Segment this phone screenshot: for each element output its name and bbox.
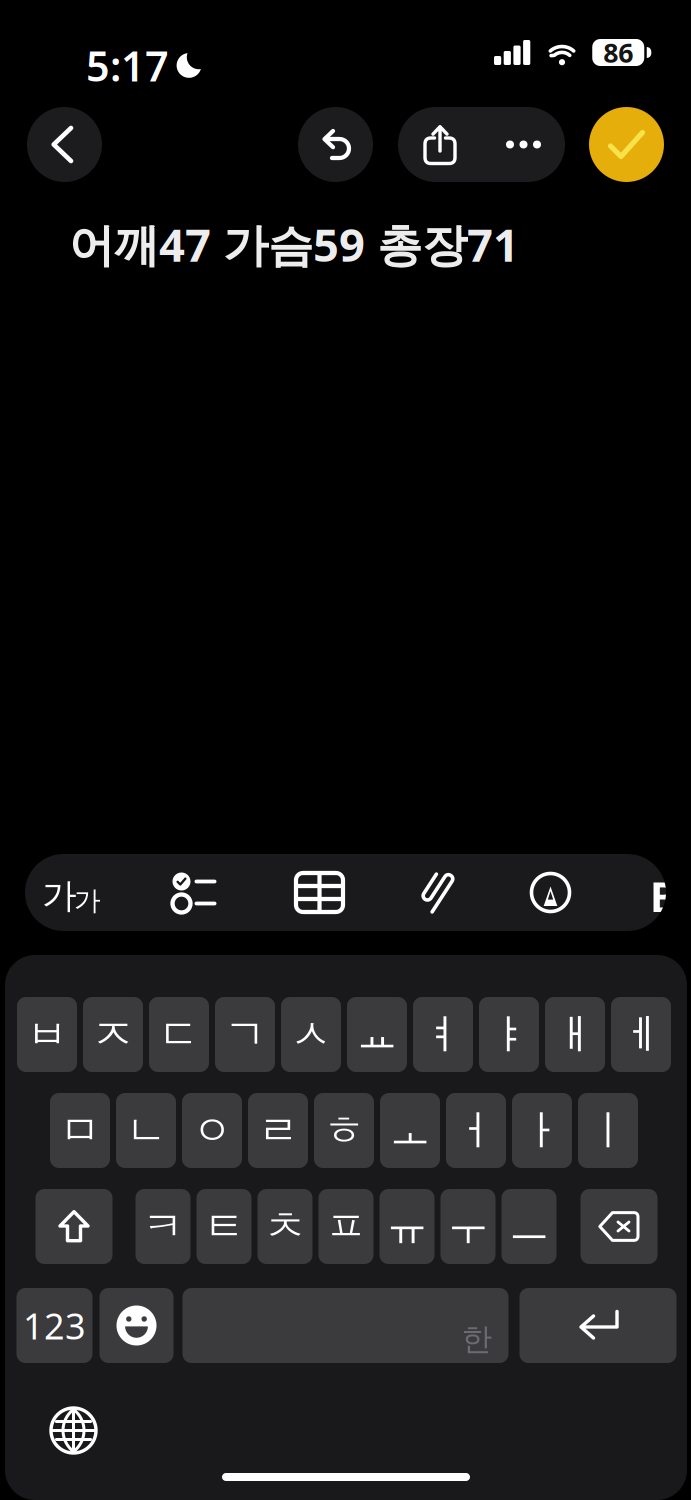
staticText: ㄷ	[158, 1009, 199, 1060]
button[interactable]: Undo	[298, 107, 373, 182]
button[interactable]: Delete	[580, 1189, 657, 1264]
button[interactable]: More options	[482, 107, 565, 182]
button[interactable]: ㅍ	[318, 1189, 373, 1264]
button[interactable]: Emoji	[99, 1288, 173, 1363]
staticText: ㅅ	[290, 1009, 331, 1060]
staticText: ㅔ	[620, 1009, 661, 1060]
staticText: 가	[74, 884, 101, 917]
staticText: ㅗ	[389, 1105, 430, 1156]
button[interactable]: ㅅ	[281, 997, 341, 1072]
staticText: 한	[461, 1320, 492, 1358]
button[interactable]: ㄷ	[149, 997, 209, 1072]
staticText: ㅜ	[447, 1201, 488, 1252]
staticText: ㅈ	[92, 1009, 133, 1060]
button[interactable]: ㅜ	[440, 1189, 495, 1264]
button[interactable]: ㅔ	[611, 997, 671, 1072]
staticText: ㅐ	[554, 1009, 595, 1060]
staticText: ㅊ	[264, 1201, 305, 1252]
staticText: ㅂ	[26, 1009, 67, 1060]
button[interactable]: ㅕ	[413, 997, 473, 1072]
button[interactable]: ㅓ	[446, 1093, 506, 1168]
button[interactable]: ㅇ	[182, 1093, 242, 1168]
staticText: ㄹ	[257, 1105, 298, 1156]
staticText: ㅁ	[59, 1105, 100, 1156]
staticText: ㅍ	[325, 1201, 366, 1252]
button[interactable]: ㅐ	[545, 997, 605, 1072]
staticText: ㅎ	[323, 1105, 364, 1156]
staticText: ㅕ	[422, 1009, 463, 1060]
staticText: ㅣ	[587, 1105, 628, 1156]
button[interactable]: ㅊ	[257, 1189, 312, 1264]
button[interactable]: ㅏ	[512, 1093, 572, 1168]
button[interactable]: ㅋ	[135, 1189, 190, 1264]
staticText: B	[650, 869, 677, 924]
button[interactable]: Share	[398, 107, 482, 182]
button[interactable]: Shift	[35, 1189, 112, 1264]
button[interactable]: ㅣ	[578, 1093, 638, 1168]
button[interactable]: Space	[182, 1288, 508, 1363]
staticText: ㅓ	[455, 1105, 496, 1156]
button[interactable]: 123	[16, 1288, 92, 1363]
staticText: 어깨47 가슴59 총장71	[69, 214, 519, 274]
staticText: ㄴ	[125, 1105, 166, 1156]
staticText: ㅋ	[142, 1201, 183, 1252]
staticText: ㅑ	[488, 1009, 529, 1060]
staticText: ㅇ	[191, 1105, 232, 1156]
button[interactable]: Back	[27, 107, 102, 182]
staticText: ㅌ	[203, 1201, 244, 1252]
button[interactable]: ㄱ	[215, 997, 275, 1072]
button[interactable]: Checklist	[146, 854, 243, 931]
button[interactable]: Next keyboard	[51, 1408, 96, 1453]
button[interactable]: Return	[519, 1288, 676, 1363]
staticText: 5:17	[86, 38, 169, 93]
staticText: ㅠ	[386, 1201, 427, 1252]
button[interactable]: ㅡ	[501, 1189, 556, 1264]
button[interactable]: Done	[589, 107, 664, 182]
button[interactable]: ㅗ	[380, 1093, 440, 1168]
button[interactable]: Text format	[25, 854, 116, 931]
staticText: ㅡ	[508, 1201, 549, 1252]
button[interactable]: ㅌ	[196, 1189, 251, 1264]
button[interactable]: ㄴ	[116, 1093, 176, 1168]
staticText: ㅛ	[356, 1009, 397, 1060]
button[interactable]: ㅎ	[314, 1093, 374, 1168]
staticText: ㅏ	[521, 1105, 562, 1156]
button[interactable]: Attach	[391, 841, 488, 918]
button[interactable]: ㅛ	[347, 997, 407, 1072]
button[interactable]: ㄹ	[248, 1093, 308, 1168]
button[interactable]: ㅑ	[479, 997, 539, 1072]
button[interactable]: ㅁ	[50, 1093, 110, 1168]
button[interactable]: Markup	[502, 854, 599, 931]
button[interactable]: Table	[271, 854, 368, 931]
staticText: 가	[42, 874, 77, 917]
staticText: 86	[603, 35, 633, 70]
button[interactable]: ㅠ	[379, 1189, 434, 1264]
staticText: 123	[23, 1302, 86, 1349]
button[interactable]: ㅂ	[17, 997, 77, 1072]
staticText: ㄱ	[224, 1009, 265, 1060]
button[interactable]: ㅈ	[83, 997, 143, 1072]
